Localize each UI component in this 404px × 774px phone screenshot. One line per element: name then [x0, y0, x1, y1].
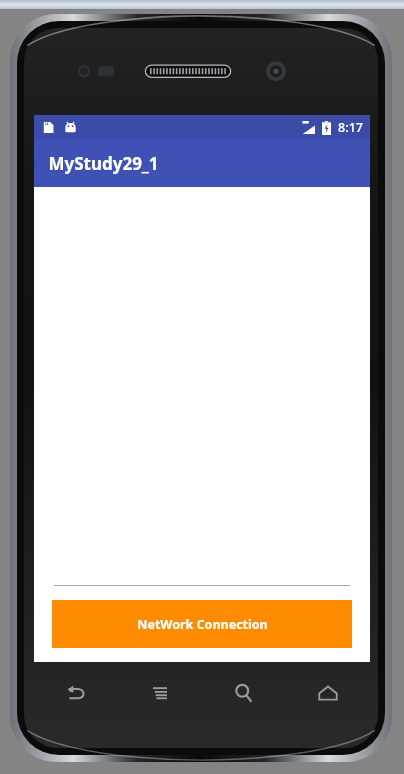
button[interactable]: Menu	[118, 666, 202, 720]
button[interactable]: Home	[286, 666, 370, 720]
staticText: MyStudy29_1	[48, 152, 159, 175]
staticText: NetWork Connection	[137, 616, 268, 633]
button[interactable]: NetWork Connection	[52, 600, 352, 648]
button[interactable]: Search	[202, 666, 286, 720]
staticText: 8:17	[338, 119, 363, 136]
button[interactable]: Back	[34, 666, 118, 720]
